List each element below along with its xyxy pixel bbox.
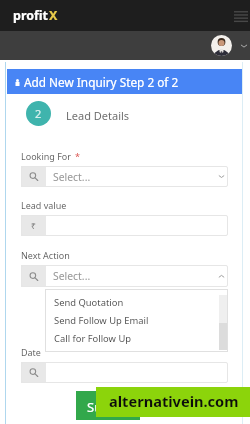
staticText: 2 [35, 106, 42, 121]
button[interactable]: Send Follow Up Email [54, 314, 237, 332]
staticText: Send Follow Up Email [54, 314, 149, 327]
button[interactable]: 2 [26, 101, 51, 126]
staticText: Select... [53, 170, 91, 184]
button[interactable]: Menu [232, 7, 250, 25]
button[interactable]: Send Quotation [54, 296, 237, 314]
staticText: Add New Inquiry Step 2 of 2 [24, 74, 179, 90]
button[interactable]: Submit [76, 391, 140, 420]
button[interactable]: Select... [21, 265, 228, 287]
staticText: Select... [53, 269, 91, 283]
staticText: Lead value [21, 199, 67, 211]
staticText: Looking For [21, 150, 72, 162]
button[interactable]: Account menu [238, 40, 249, 51]
staticText: Date [21, 346, 41, 358]
button[interactable]: Select... [21, 166, 228, 187]
button[interactable] [21, 362, 228, 383]
staticText: ₹ [31, 220, 36, 232]
staticText: Next Action [21, 249, 70, 261]
staticText: Lead Details [66, 108, 130, 123]
staticText: Send Quotation [54, 296, 124, 309]
button[interactable]: ₹ [21, 215, 228, 236]
staticText: profit [13, 7, 49, 24]
button[interactable]: Call for Follow Up [54, 332, 237, 350]
staticText: X [49, 7, 58, 24]
staticText: * [75, 150, 80, 162]
staticText: alternativein.com [109, 391, 239, 411]
button[interactable]: profit [13, 7, 58, 24]
button[interactable]: Profile [211, 35, 232, 56]
staticText: Submit [87, 398, 131, 416]
button[interactable]: Add New Inquiry Step 2 of 2 [7, 69, 242, 94]
staticText: Call for Follow Up [54, 332, 132, 345]
